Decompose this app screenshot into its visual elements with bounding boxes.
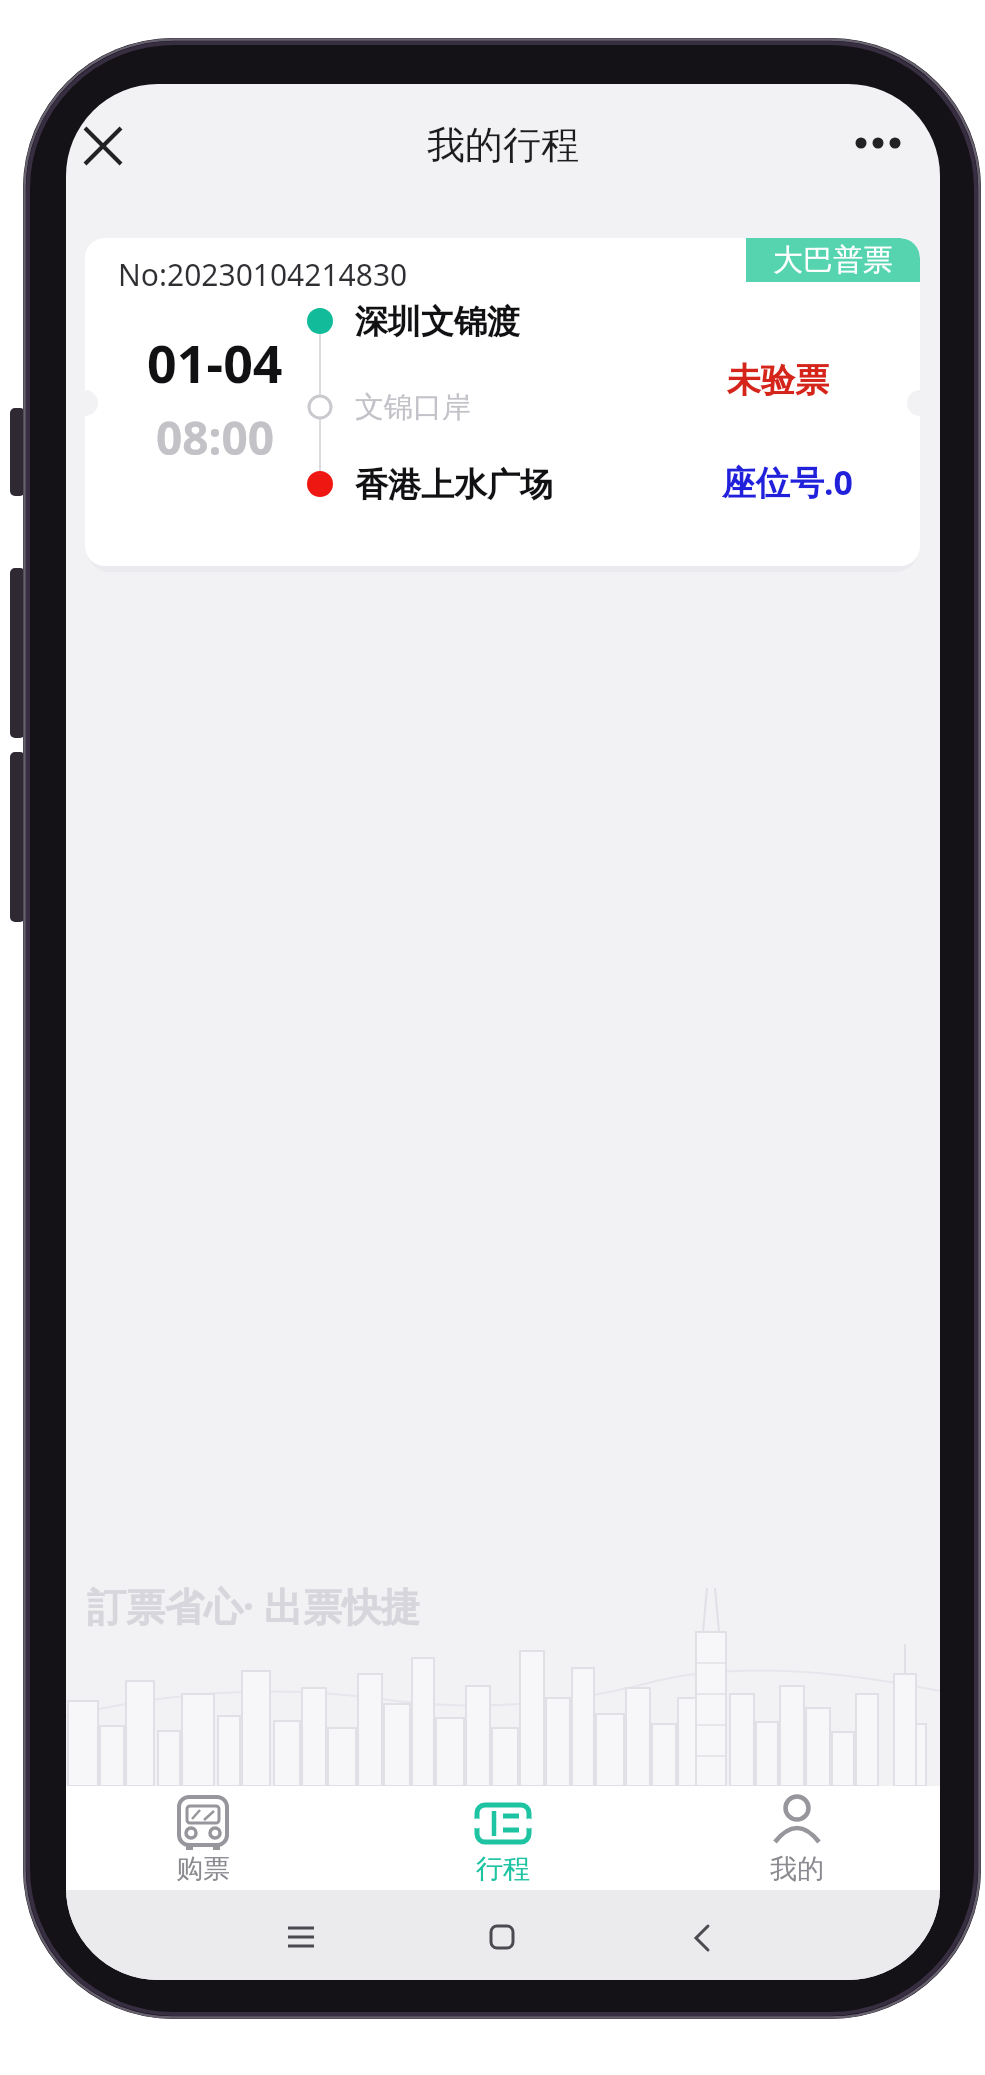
staticText: 我的行程 bbox=[427, 121, 579, 169]
button[interactable] bbox=[288, 1926, 314, 1948]
button[interactable] bbox=[85, 128, 121, 164]
staticText: 行程 bbox=[476, 1852, 530, 1886]
button[interactable]: 大巴普票 bbox=[85, 238, 920, 566]
button[interactable]: 我的 bbox=[747, 1786, 847, 1890]
staticText: 深圳文锦渡 bbox=[355, 301, 520, 341]
staticText: 訂票省心· 出票快捷 bbox=[87, 1579, 421, 1632]
staticText: 01-04 bbox=[147, 327, 283, 387]
button[interactable] bbox=[852, 130, 904, 156]
staticText: 座位号.0 bbox=[722, 459, 854, 499]
staticText: 购票 bbox=[176, 1852, 230, 1886]
button[interactable] bbox=[491, 1926, 513, 1948]
staticText: 大巴普票 bbox=[773, 241, 893, 279]
button[interactable] bbox=[694, 1926, 708, 1950]
staticText: 我的 bbox=[770, 1852, 824, 1886]
staticText: No:20230104214830 bbox=[118, 254, 408, 295]
button[interactable]: 行程 bbox=[453, 1786, 553, 1890]
staticText: 未验票 bbox=[727, 359, 829, 399]
button[interactable]: 购票 bbox=[153, 1786, 253, 1890]
staticText: 香港上水广场 bbox=[355, 464, 553, 504]
staticText: 文锦口岸 bbox=[355, 389, 471, 426]
staticText: 08:00 bbox=[156, 406, 275, 462]
